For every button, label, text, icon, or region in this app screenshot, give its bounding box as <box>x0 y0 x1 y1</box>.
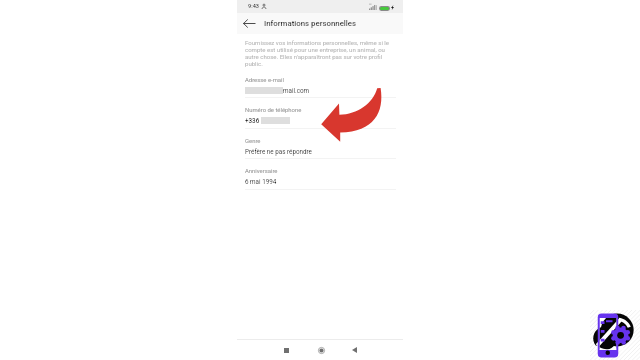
staticText: Anniversaire <box>245 168 278 175</box>
staticText: 6 mai 1994 <box>245 178 277 185</box>
button[interactable]: Recent apps <box>276 340 296 360</box>
button[interactable]: Back <box>344 340 364 360</box>
staticText: Informations personnelles <box>264 19 357 28</box>
button[interactable]: Site logo <box>590 310 640 360</box>
staticText: Préfère ne pas répondre <box>245 148 312 155</box>
button[interactable]: Adresse e-mail <box>245 77 396 98</box>
button[interactable]: Back <box>237 13 260 34</box>
button[interactable]: Home <box>311 340 331 360</box>
staticText: 9:43 <box>248 3 260 10</box>
button[interactable]: Numéro de téléphone <box>245 107 396 128</box>
staticText: +336 <box>245 117 260 124</box>
button[interactable]: Genre <box>245 138 396 159</box>
staticText: Genre <box>245 138 261 145</box>
staticText: Adresse e-mail <box>245 77 284 84</box>
staticText: Numéro de téléphone <box>245 107 302 114</box>
button[interactable]: Anniversaire <box>245 168 396 189</box>
staticText: mail.com <box>283 87 310 94</box>
staticText: Fournissez vos informations personnelles… <box>245 39 392 67</box>
